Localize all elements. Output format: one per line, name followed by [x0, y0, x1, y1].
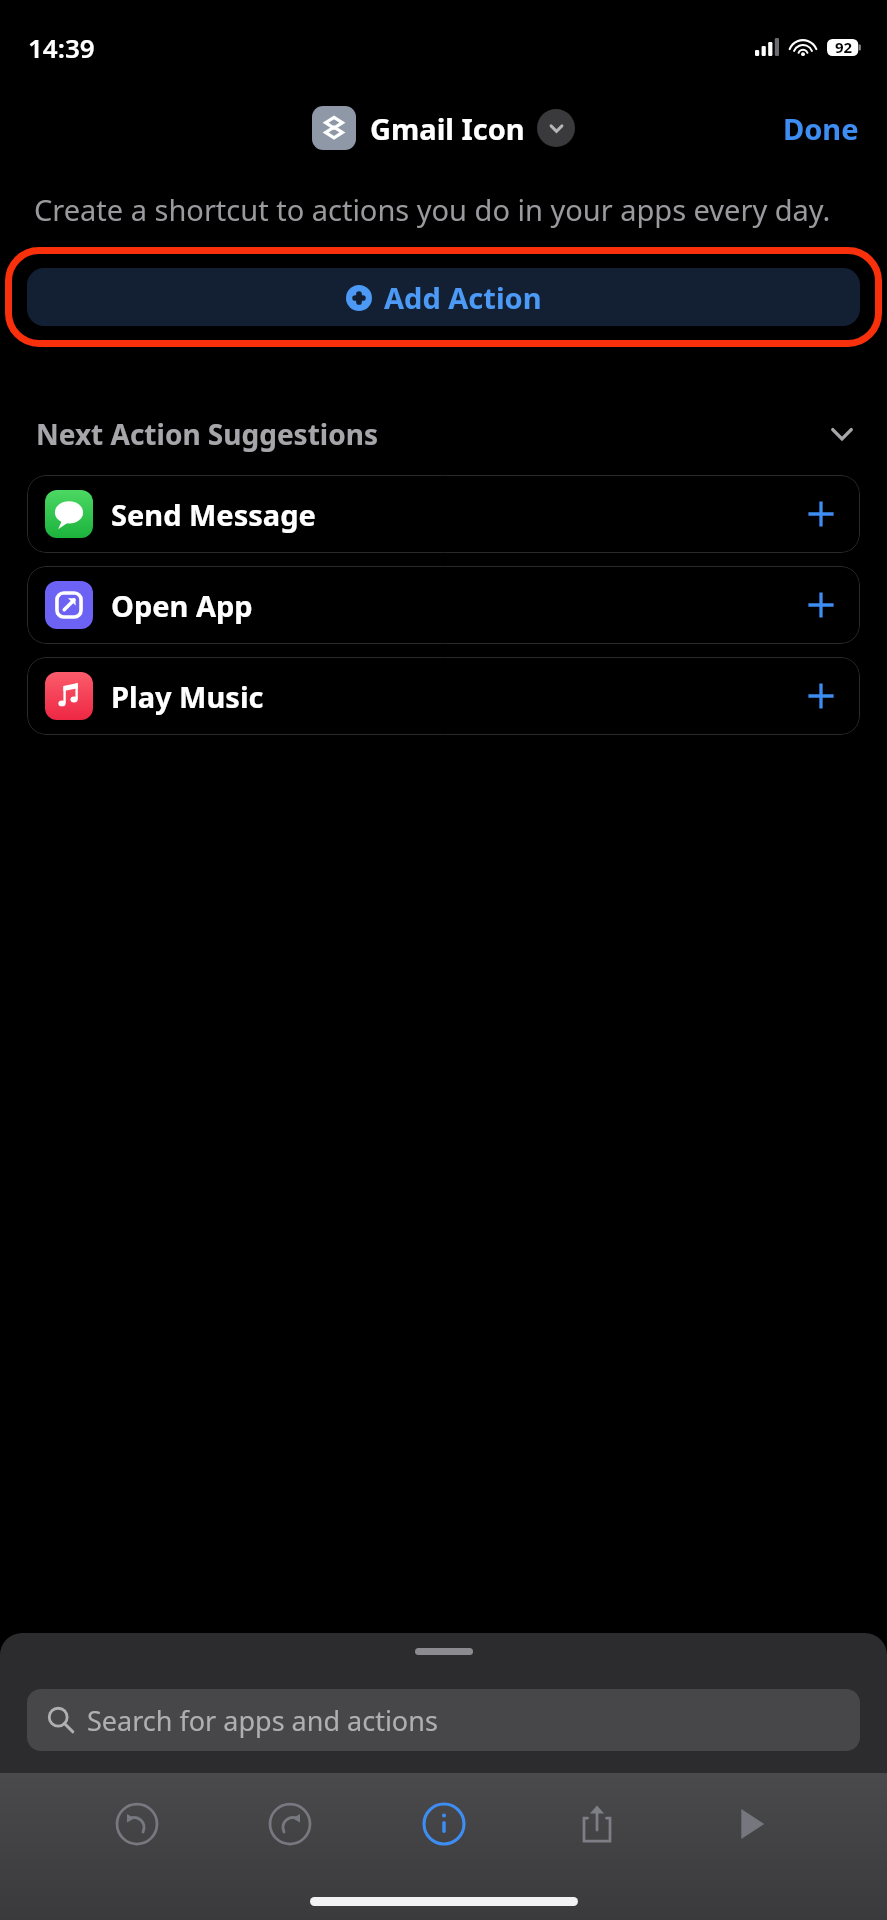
staticText: Add Action: [384, 278, 542, 317]
staticText: Open App: [111, 586, 253, 625]
button[interactable]: Gmail Icon: [312, 106, 575, 150]
staticText: Next Action Suggestions: [36, 415, 378, 453]
staticText: Play Music: [111, 677, 264, 716]
other: Add Play Music: [806, 681, 836, 711]
button[interactable]: Play Music: [27, 657, 860, 735]
other: Show shortcut options: [537, 109, 575, 147]
button[interactable]: Share: [560, 1787, 634, 1861]
button[interactable]: Done: [755, 99, 887, 158]
button[interactable]: Details: [407, 1787, 481, 1861]
button[interactable]: Open App: [27, 566, 860, 644]
other: Add Open App: [806, 590, 836, 620]
staticText: Send Message: [111, 495, 316, 534]
button[interactable]: Send Message: [27, 475, 860, 553]
staticText: 14:39: [28, 30, 95, 65]
staticText: Search for apps and actions: [87, 1702, 438, 1739]
button[interactable]: Next Action Suggestions: [0, 409, 887, 459]
button[interactable]: Undo: [100, 1787, 174, 1861]
other: Add Send Message: [806, 499, 836, 529]
staticText: Done: [783, 109, 859, 148]
button[interactable]: Add Action: [27, 268, 860, 326]
button[interactable]: Run shortcut: [714, 1787, 788, 1861]
button[interactable]: Search for apps and actions: [27, 1689, 860, 1751]
staticText: Gmail Icon: [370, 109, 525, 148]
button[interactable]: Redo: [253, 1787, 327, 1861]
staticText: 92: [835, 37, 853, 57]
staticText: Create a shortcut to actions you do in y…: [34, 190, 831, 229]
